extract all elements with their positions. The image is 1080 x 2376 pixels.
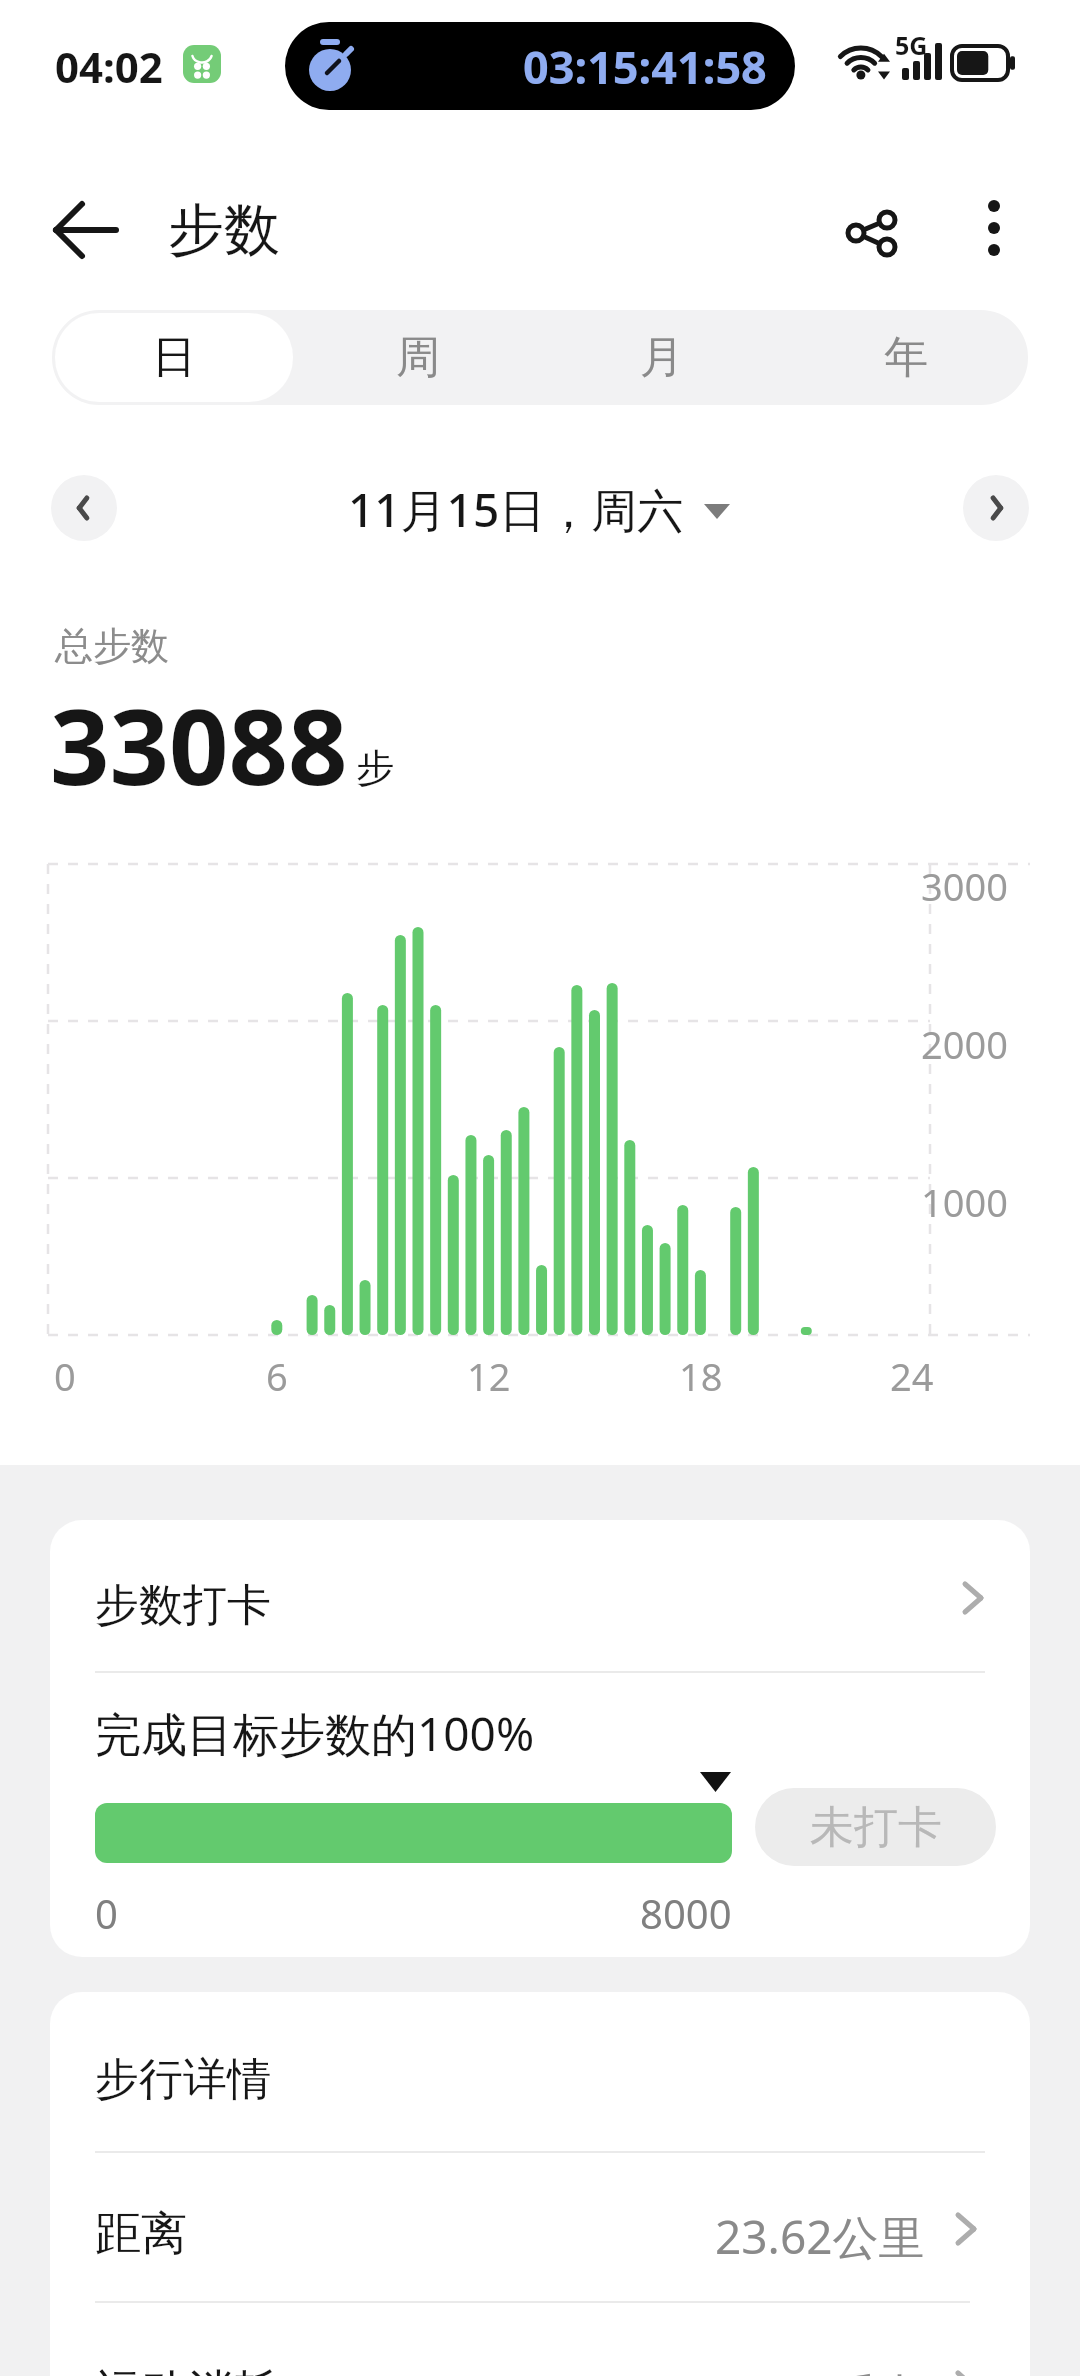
staticText: 1000 [921, 1176, 1008, 1228]
staticText: 步数打卡 [95, 1578, 271, 1633]
staticText: 956千卡 [754, 2363, 925, 2376]
staticText: 3000 [921, 860, 1008, 912]
staticText: 总步数 [55, 622, 169, 670]
staticText: 12 [467, 1350, 511, 1402]
staticText: 23.62公里 [715, 2205, 925, 2268]
staticText: 6 [266, 1350, 288, 1402]
staticText: 0 [54, 1350, 76, 1402]
staticText: 步 [356, 744, 394, 792]
button[interactable]: 11月15日，周六 [348, 478, 732, 541]
staticText: 2000 [921, 1018, 1008, 1070]
staticText: 距离 [95, 2205, 187, 2263]
staticText: 月 [640, 330, 684, 385]
button[interactable] [960, 190, 1030, 270]
staticText: 运动消耗 [95, 2363, 279, 2376]
staticText: 日 [152, 330, 196, 385]
staticText: 0 [95, 1886, 118, 1940]
staticText: 完成目标步数的100% [95, 1702, 535, 1765]
button[interactable] [830, 190, 910, 270]
staticText: 11月15日，周六 [348, 478, 684, 541]
staticText: 周 [396, 330, 440, 385]
button[interactable]: 步数打卡 [50, 1520, 1030, 1670]
staticText: 8000 [640, 1886, 732, 1940]
staticText: 5G [895, 28, 928, 62]
button[interactable]: 年 [784, 310, 1028, 405]
button[interactable] [40, 195, 120, 265]
staticText: 年 [884, 330, 928, 385]
button[interactable]: 月 [540, 310, 784, 405]
button[interactable] [963, 475, 1029, 541]
button[interactable]: 周 [296, 310, 540, 405]
staticText: 步行详情 [95, 2052, 271, 2107]
staticText: 03:15:41:58 [523, 36, 767, 97]
staticText: 04:02 [55, 38, 163, 95]
staticText: 步数 [168, 195, 280, 266]
staticText: 24 [890, 1350, 934, 1402]
button[interactable]: 日 [52, 310, 296, 405]
staticText: 未打卡 [810, 1800, 942, 1855]
staticText: 18 [679, 1350, 723, 1402]
button[interactable] [51, 475, 117, 541]
button[interactable]: 运动消耗 [50, 2303, 1030, 2376]
staticText: 33088 [50, 674, 348, 816]
button[interactable]: 距离 [50, 2153, 1030, 2301]
button[interactable]: 未打卡 [755, 1788, 996, 1866]
